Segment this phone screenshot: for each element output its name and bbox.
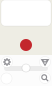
button[interactable]: Send xyxy=(39,56,50,67)
button[interactable]: Settings xyxy=(1,56,12,67)
button[interactable]: Record xyxy=(1,73,12,84)
button[interactable]: Search xyxy=(39,72,50,83)
button[interactable]: Slider xyxy=(22,64,30,72)
